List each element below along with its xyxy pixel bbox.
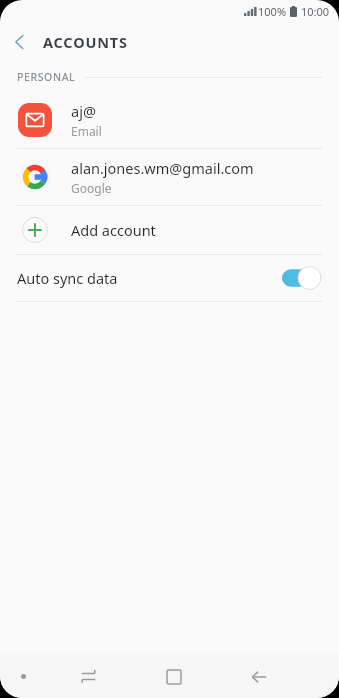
staticText: Email (71, 123, 102, 139)
button[interactable]: Back (216, 655, 301, 698)
staticText: aj@ (71, 101, 96, 121)
button[interactable]: alan.jones.wm@gmail.com (0, 149, 339, 205)
button[interactable]: Add account (0, 206, 339, 254)
button[interactable]: Back (0, 23, 38, 61)
other: Auto sync data toggle (282, 266, 322, 290)
staticText: alan.jones.wm@gmail.com (71, 158, 254, 178)
button[interactable]: Auto sync data (0, 255, 339, 301)
staticText: Google (71, 180, 112, 196)
staticText: 10:00 (301, 4, 330, 19)
button[interactable]: aj@ (0, 92, 339, 148)
button[interactable]: Recent apps (46, 655, 131, 698)
staticText: PERSONAL (17, 70, 76, 84)
staticText: Auto sync data (17, 268, 118, 288)
staticText: 100% (258, 4, 287, 19)
staticText: ACCOUNTS (43, 32, 128, 52)
button[interactable]: Home (131, 655, 216, 698)
staticText: Add account (71, 220, 156, 240)
